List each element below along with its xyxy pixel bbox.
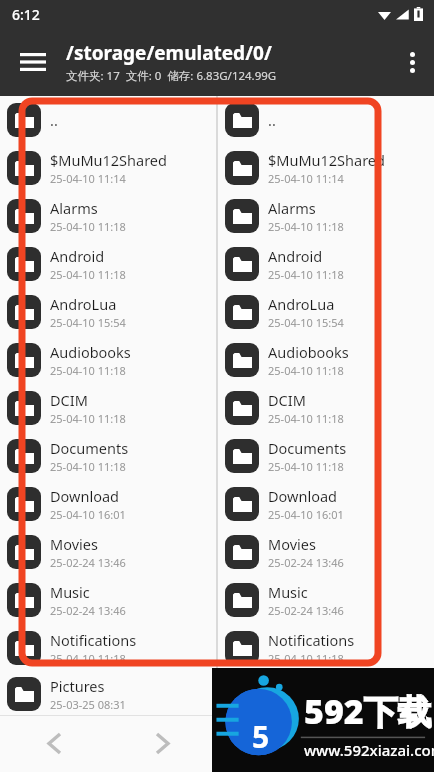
staticText: 文件夹: 17 文件: 0 储存: 6.83G/124.99G <box>66 68 277 84</box>
staticText: Alarms <box>50 198 98 218</box>
staticText: AndroLua <box>268 294 335 314</box>
staticText: 25-04-10 11:18 <box>50 651 126 666</box>
button[interactable]: Audiobooks <box>218 336 434 384</box>
button[interactable]: Music <box>218 576 434 624</box>
staticText: 25-04-10 11:18 <box>268 459 344 474</box>
staticText: Download <box>50 486 119 506</box>
staticText: 25-02-24 13:46 <box>268 603 344 618</box>
staticText: 25-04-10 11:14 <box>50 171 126 186</box>
button[interactable]: Notifications <box>218 624 434 672</box>
staticText: 25-04-10 11:18 <box>50 411 126 426</box>
button[interactable]: Movies <box>0 528 216 576</box>
button[interactable]: Documents <box>0 432 216 480</box>
button[interactable]: Android <box>0 240 216 288</box>
staticText: Documents <box>50 438 129 458</box>
button[interactable]: $MuMu12Shared <box>218 144 434 192</box>
staticText: Music <box>50 582 90 602</box>
staticText: Music <box>268 582 308 602</box>
staticText: 25-02-24 13:46 <box>50 603 126 618</box>
button[interactable]: Music <box>0 576 216 624</box>
staticText: 25-04-10 11:18 <box>268 363 344 378</box>
staticText: .. <box>50 110 58 130</box>
staticText: 5 <box>252 716 270 757</box>
staticText: Audiobooks <box>50 342 131 362</box>
staticText: Notifications <box>50 630 137 650</box>
staticText: 25-04-10 11:18 <box>50 219 126 234</box>
button[interactable]: $MuMu12Shared <box>0 144 216 192</box>
staticText: 6:12 <box>12 5 40 24</box>
staticText: AndroLua <box>50 294 117 314</box>
staticText: .. <box>268 110 276 130</box>
button[interactable]: Android <box>218 240 434 288</box>
staticText: 25-04-10 11:18 <box>268 651 344 666</box>
staticText: Documents <box>268 438 347 458</box>
staticText: Pictures <box>268 676 323 696</box>
button[interactable]: Back <box>0 715 108 772</box>
button[interactable]: Notifications <box>0 624 216 672</box>
staticText: Pictures <box>50 676 105 696</box>
staticText: 25-04-10 11:18 <box>50 459 126 474</box>
staticText: Android <box>50 246 105 266</box>
button[interactable]: .. <box>218 96 434 144</box>
staticText: 25-04-10 15:54 <box>268 315 344 330</box>
staticText: Movies <box>50 534 98 554</box>
staticText: Alarms <box>268 198 316 218</box>
staticText: 25-03-25 08:31 <box>268 697 344 712</box>
button[interactable]: Forward <box>108 715 216 772</box>
staticText: 25-04-10 15:54 <box>50 315 126 330</box>
button[interactable]: DCIM <box>0 384 216 432</box>
staticText: DCIM <box>50 390 88 410</box>
staticText: Android <box>268 246 323 266</box>
staticText: DCIM <box>268 390 306 410</box>
staticText: 25-03-25 08:31 <box>50 697 126 712</box>
staticText: Movies <box>268 534 316 554</box>
staticText: www.592xiazai.com <box>304 740 434 760</box>
button[interactable]: Download <box>0 480 216 528</box>
staticText: $MuMu12Shared <box>268 150 385 170</box>
button[interactable]: AndroLua <box>218 288 434 336</box>
button[interactable]: Pictures <box>218 672 434 715</box>
staticText: 25-04-10 11:18 <box>268 267 344 282</box>
button[interactable]: Download <box>218 480 434 528</box>
button[interactable]: Documents <box>218 432 434 480</box>
staticText: 25-04-10 16:01 <box>268 507 344 522</box>
button[interactable]: Audiobooks <box>0 336 216 384</box>
staticText: 25-04-10 11:18 <box>268 411 344 426</box>
staticText: 25-02-24 13:46 <box>50 555 126 570</box>
button[interactable]: DCIM <box>218 384 434 432</box>
staticText: 25-04-10 11:18 <box>50 363 126 378</box>
button[interactable]: Alarms <box>218 192 434 240</box>
staticText: 25-04-10 16:01 <box>50 507 126 522</box>
staticText: 25-04-10 11:14 <box>268 171 344 186</box>
staticText: Audiobooks <box>268 342 349 362</box>
staticText: Download <box>268 486 337 506</box>
button[interactable]: Alarms <box>0 192 216 240</box>
button[interactable]: Pictures <box>0 672 216 715</box>
staticText: Notifications <box>268 630 355 650</box>
staticText: 592下载 <box>304 688 432 734</box>
button[interactable]: More options <box>390 28 434 96</box>
staticText: 25-04-10 11:18 <box>50 267 126 282</box>
staticText: /storage/emulated/0/ <box>66 40 272 66</box>
button[interactable]: Movies <box>218 528 434 576</box>
button[interactable]: AndroLua <box>0 288 216 336</box>
staticText: $MuMu12Shared <box>50 150 167 170</box>
staticText: 25-02-24 13:46 <box>268 555 344 570</box>
button[interactable]: Menu <box>0 28 66 96</box>
staticText: 25-04-10 11:18 <box>268 219 344 234</box>
button[interactable]: .. <box>0 96 216 144</box>
